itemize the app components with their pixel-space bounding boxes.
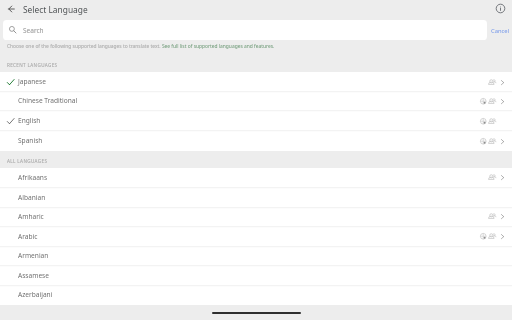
staticText: Azerbaijani (18, 290, 53, 299)
button[interactable]: Back (5, 2, 19, 16)
button[interactable]: Info (494, 2, 507, 15)
button[interactable]: Armenian (0, 246, 512, 266)
button[interactable]: Spanish (0, 131, 512, 151)
button[interactable]: Chinese Traditional (0, 91, 512, 111)
staticText: Albanian (18, 193, 46, 202)
staticText: Japanese (18, 77, 46, 86)
staticText: Cancel (491, 27, 510, 35)
staticText: Select Language (23, 4, 88, 15)
button[interactable]: Albanian (0, 188, 512, 208)
button[interactable]: English (0, 111, 512, 131)
staticText: Afrikaans (18, 173, 48, 182)
staticText: ALL LANGUAGES (7, 158, 48, 164)
button[interactable]: Japanese (0, 72, 512, 92)
staticText: Spanish (18, 136, 43, 145)
staticText: English (18, 116, 41, 125)
staticText: Armenian (18, 251, 49, 260)
staticText: Chinese Traditional (18, 96, 78, 105)
button[interactable]: Afrikaans (0, 168, 512, 188)
button[interactable]: Search (3, 20, 487, 40)
button[interactable]: Amharic (0, 207, 512, 227)
button[interactable]: Assamese (0, 266, 512, 286)
staticText: Assamese (18, 271, 49, 280)
staticText: RECENT LANGUAGES (7, 62, 58, 68)
staticText: Arabic (18, 232, 38, 241)
button[interactable]: Cancel (488, 20, 511, 40)
button[interactable]: Azerbaijani (0, 285, 512, 305)
staticText: Amharic (18, 212, 44, 221)
button[interactable]: Arabic (0, 227, 512, 247)
staticText: Choose one of the following supported la… (7, 43, 275, 50)
staticText: Search (23, 26, 44, 35)
